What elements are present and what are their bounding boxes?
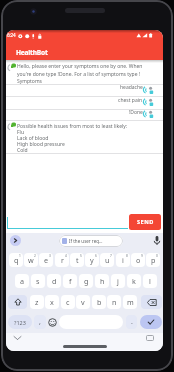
- button[interactable]: e: [39, 253, 53, 267]
- button[interactable]: v: [76, 295, 90, 309]
- button[interactable]: g: [79, 274, 93, 288]
- button[interactable]: o: [131, 253, 145, 267]
- button[interactable]: j: [111, 274, 125, 288]
- staticText: s: [36, 276, 40, 286]
- button[interactable]: [141, 295, 162, 309]
- staticText: SEND: [137, 218, 154, 226]
- staticText: d: [52, 276, 57, 286]
- button[interactable]: m: [123, 295, 137, 309]
- staticText: y: [90, 255, 94, 265]
- staticText: n: [112, 297, 117, 307]
- button[interactable]: l: [143, 274, 157, 288]
- staticText: If the user req...: [69, 238, 103, 244]
- button[interactable]: y: [85, 253, 99, 267]
- staticText: 1: [19, 254, 21, 258]
- staticText: chest pain: [118, 97, 143, 104]
- staticText: !Done: [129, 109, 143, 116]
- staticText: Possible health issues from most to leas…: [17, 123, 128, 154]
- button[interactable]: x: [45, 295, 59, 309]
- staticText: q: [14, 255, 19, 265]
- staticText: r: [61, 255, 64, 265]
- button[interactable]: [8, 295, 27, 309]
- staticText: t: [76, 255, 79, 265]
- staticText: .: [131, 317, 133, 327]
- button[interactable]: [59, 315, 123, 329]
- staticText: g: [84, 276, 89, 286]
- staticText: f: [69, 276, 72, 286]
- button[interactable]: f: [63, 274, 77, 288]
- staticText: 9: [141, 254, 143, 258]
- staticText: u: [105, 255, 110, 265]
- staticText: Hello, please enter your symptoms one by…: [17, 63, 143, 84]
- button[interactable]: a: [15, 274, 29, 288]
- button[interactable]: w: [24, 253, 38, 267]
- staticText: 0: [156, 254, 158, 258]
- button[interactable]: i: [116, 253, 130, 267]
- button[interactable]: .: [126, 315, 137, 329]
- staticText: 8: [126, 254, 128, 258]
- staticText: o: [136, 255, 141, 265]
- button[interactable]: s: [31, 274, 45, 288]
- staticText: m: [127, 297, 134, 307]
- staticText: v: [81, 297, 85, 307]
- staticText: z: [35, 297, 39, 307]
- staticText: headache: [120, 84, 143, 91]
- button[interactable]: [140, 315, 162, 329]
- staticText: a: [20, 276, 25, 286]
- staticText: 7: [110, 254, 112, 258]
- button[interactable]: u: [100, 253, 114, 267]
- button[interactable]: z: [30, 295, 44, 309]
- staticText: j: [117, 276, 119, 286]
- button[interactable]: n: [107, 295, 121, 309]
- staticText: e: [44, 255, 49, 265]
- staticText: 6: [95, 254, 97, 258]
- button[interactable]: [152, 235, 162, 247]
- staticText: p: [151, 255, 156, 265]
- button[interactable]: d: [47, 274, 61, 288]
- staticText: w: [28, 255, 34, 265]
- staticText: HealthBot: [16, 48, 48, 57]
- button[interactable]: k: [127, 274, 141, 288]
- staticText: ?123: [14, 319, 26, 326]
- staticText: l: [149, 276, 151, 286]
- staticText: h: [100, 276, 105, 286]
- staticText: 5: [80, 254, 82, 258]
- button[interactable]: ?123: [8, 315, 32, 329]
- button[interactable]: ,: [34, 315, 46, 329]
- button[interactable]: r: [55, 253, 69, 267]
- button[interactable]: c: [61, 295, 75, 309]
- staticText: c: [66, 297, 70, 307]
- button[interactable]: t: [70, 253, 84, 267]
- staticText: x: [50, 297, 54, 307]
- button[interactable]: If the user req...: [59, 235, 123, 247]
- staticText: 2: [34, 254, 36, 258]
- button[interactable]: q: [9, 253, 23, 267]
- staticText: ,: [39, 317, 41, 327]
- button[interactable]: [48, 318, 57, 327]
- staticText: 4: [65, 254, 67, 258]
- button[interactable]: [10, 235, 21, 246]
- staticText: 6:24: [7, 32, 16, 38]
- button[interactable]: b: [92, 295, 106, 309]
- button[interactable]: h: [95, 274, 109, 288]
- staticText: 3: [49, 254, 51, 258]
- button[interactable]: SEND: [129, 214, 161, 230]
- staticText: k: [132, 276, 136, 286]
- staticText: i: [122, 255, 124, 265]
- staticText: b: [97, 297, 102, 307]
- button[interactable]: p: [146, 253, 160, 267]
